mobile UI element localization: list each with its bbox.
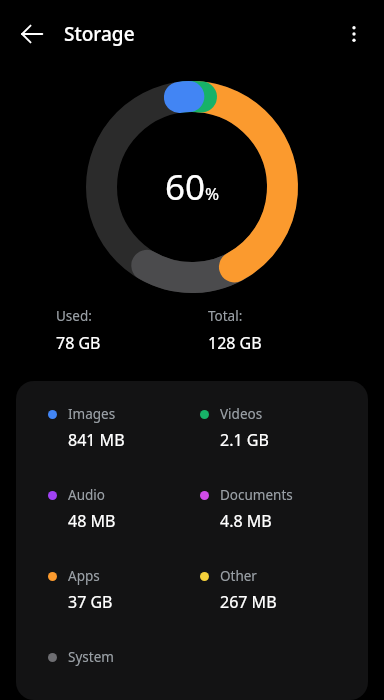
staticText: 37 GB [68,591,113,613]
button[interactable]: Documents [200,486,352,532]
staticText: System [68,648,114,666]
staticText: Used: [56,307,92,325]
staticText: Storage [64,21,135,47]
button[interactable]: Apps [48,567,200,613]
staticText: 128 GB [208,332,262,354]
staticText: Images [68,405,116,423]
staticText: Total: [208,307,243,325]
staticText: 4.8 MB [220,510,272,532]
staticText: 60% [165,163,220,211]
button[interactable]: Images [48,405,200,451]
button[interactable]: Audio [48,486,200,532]
button[interactable]: Back [8,10,56,58]
button[interactable]: More options [330,10,378,58]
button[interactable]: Other [200,567,352,613]
button[interactable]: System [48,648,200,676]
button[interactable]: Videos [200,405,352,451]
staticText: Videos [220,405,263,423]
staticText: 267 MB [220,591,277,613]
staticText: 78 GB [56,332,101,354]
staticText: Apps [68,567,100,585]
staticText: Documents [220,486,293,504]
staticText: Other [220,567,257,585]
staticText: 48 MB [68,510,116,532]
staticText: 841 MB [68,429,125,451]
staticText: 2.1 GB [220,429,269,451]
staticText: Audio [68,486,105,504]
